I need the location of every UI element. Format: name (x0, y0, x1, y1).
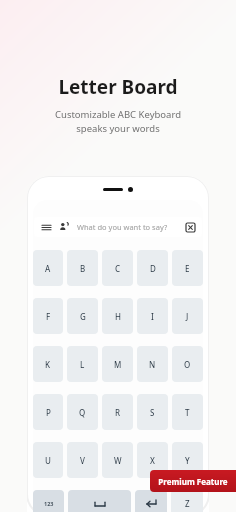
button[interactable]: Numbers and symbols (33, 490, 64, 512)
button[interactable]: G (67, 298, 98, 334)
staticText: A (45, 263, 51, 274)
button[interactable]: Q (67, 394, 98, 430)
button[interactable]: A (33, 250, 63, 286)
button[interactable]: Z (171, 490, 203, 512)
staticText: W (114, 455, 122, 466)
staticText: Customizable ABC Keyboard speaks your wo… (55, 108, 181, 135)
staticText: Q (79, 407, 86, 418)
other: Speak (58, 221, 70, 233)
button[interactable]: J (172, 298, 203, 334)
button[interactable]: N (137, 346, 168, 382)
button[interactable]: S (137, 394, 168, 430)
staticText: S (150, 407, 155, 418)
button[interactable]: T (172, 394, 203, 430)
button[interactable]: H (102, 298, 133, 334)
staticText: R (115, 407, 121, 418)
staticText: N (149, 359, 156, 370)
button[interactable]: Y (172, 442, 203, 478)
staticText: 123 (44, 500, 54, 507)
button[interactable]: U (33, 442, 63, 478)
button[interactable]: V (67, 442, 98, 478)
staticText: Premium Feature (158, 476, 228, 487)
button[interactable]: M (102, 346, 133, 382)
staticText: X (150, 455, 155, 466)
button[interactable]: C (102, 250, 133, 286)
button[interactable]: I (137, 298, 168, 334)
button[interactable]: Enter (135, 490, 167, 512)
button[interactable]: Premium Feature (150, 470, 236, 492)
button[interactable]: F (33, 298, 63, 334)
button[interactable]: B (67, 250, 98, 286)
staticText: D (150, 263, 156, 274)
button[interactable]: Space (68, 490, 131, 512)
button[interactable]: R (102, 394, 133, 430)
button[interactable]: O (172, 346, 203, 382)
other: Clear text (185, 222, 196, 233)
staticText: F (46, 311, 51, 322)
button[interactable]: W (102, 442, 133, 478)
button[interactable]: E (172, 250, 203, 286)
staticText: What do you want to say? (77, 222, 185, 232)
button[interactable]: L (67, 346, 98, 382)
staticText: B (80, 263, 86, 274)
other: Menu (40, 221, 52, 233)
button[interactable]: Menu (34, 217, 202, 237)
staticText: L (80, 359, 85, 370)
staticText: Z (185, 498, 190, 509)
button[interactable]: K (33, 346, 63, 382)
staticText: P (46, 407, 51, 418)
staticText: U (45, 455, 51, 466)
staticText: Letter Board (58, 74, 178, 100)
button[interactable]: X (137, 442, 168, 478)
staticText: Y (185, 455, 190, 466)
button[interactable]: D (137, 250, 168, 286)
staticText: I (151, 311, 154, 322)
staticText: M (114, 359, 122, 370)
staticText: J (186, 311, 189, 322)
staticText: K (45, 359, 51, 370)
staticText: G (80, 311, 86, 322)
staticText: C (115, 263, 121, 274)
staticText: V (80, 455, 85, 466)
staticText: E (185, 263, 190, 274)
staticText: T (185, 407, 190, 418)
button[interactable]: P (33, 394, 63, 430)
staticText: O (184, 359, 191, 370)
staticText: H (115, 311, 121, 322)
